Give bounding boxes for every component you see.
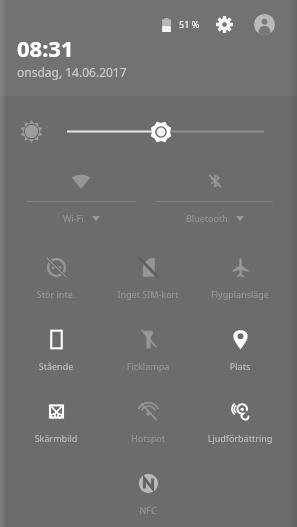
button[interactable]: Flygplansläge bbox=[194, 246, 286, 304]
staticText: Hotspot bbox=[102, 432, 194, 444]
button[interactable]: Brightness bbox=[20, 120, 43, 143]
staticText: Plats bbox=[194, 360, 286, 372]
button[interactable]: Stör inte. bbox=[10, 246, 102, 304]
staticText: Ficklampa bbox=[102, 360, 194, 372]
staticText: Inget SIM-kort bbox=[102, 288, 194, 300]
staticText: NFC bbox=[102, 504, 194, 516]
button[interactable]: Ficklampa bbox=[102, 318, 194, 376]
button[interactable]: NFC bbox=[102, 462, 194, 520]
staticText: Skärmbild bbox=[10, 432, 102, 444]
staticText: Bluetooth bbox=[186, 212, 228, 224]
button[interactable]: Wi-Fi bbox=[26, 168, 136, 228]
button[interactable]: Plats bbox=[194, 318, 286, 376]
button[interactable]: Inget SIM-kort bbox=[102, 246, 194, 304]
staticText: Stör inte. bbox=[10, 288, 102, 300]
button[interactable]: Skärmbild bbox=[10, 390, 102, 448]
staticText: onsdag, 14.06.2017 bbox=[17, 64, 127, 80]
button[interactable]: Bluetooth bbox=[156, 168, 273, 228]
button[interactable]: Stående bbox=[10, 318, 102, 376]
staticText: 51 % bbox=[179, 18, 200, 30]
button[interactable]: Ljudförbättring bbox=[194, 390, 286, 448]
button[interactable]: Hotspot bbox=[102, 390, 194, 448]
staticText: Flygplansläge bbox=[194, 288, 286, 300]
button[interactable]: Settings bbox=[210, 10, 239, 39]
staticText: 08:31 bbox=[17, 33, 74, 63]
staticText: Wi-Fi bbox=[63, 212, 84, 224]
staticText: Stående bbox=[10, 360, 102, 372]
staticText: Ljudförbättring bbox=[194, 432, 286, 444]
button[interactable]: User account bbox=[250, 10, 279, 39]
